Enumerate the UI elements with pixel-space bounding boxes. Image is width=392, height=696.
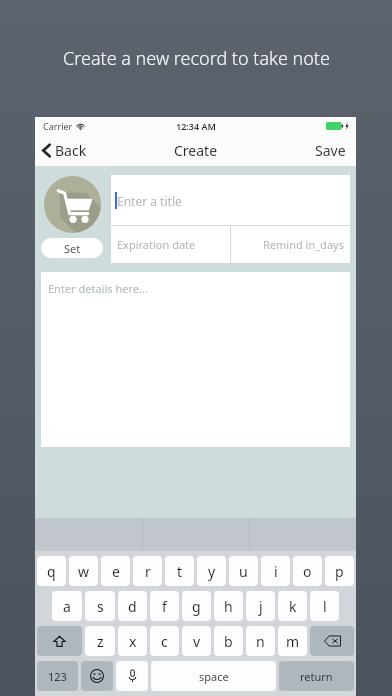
button[interactable]: h (214, 591, 243, 621)
button[interactable]: Save (305, 136, 356, 165)
staticText: n (256, 632, 265, 651)
staticText: q (47, 562, 56, 581)
staticText: g (192, 597, 201, 616)
staticText: i (274, 562, 278, 581)
button[interactable]: e (101, 556, 130, 586)
button[interactable]: Choose category icon (44, 176, 101, 233)
staticText: e (112, 562, 120, 581)
button[interactable]: 123 (37, 661, 78, 691)
staticText: r (145, 562, 151, 581)
staticText: u (239, 562, 248, 581)
staticText: Carrier (43, 120, 73, 132)
button[interactable]: d (118, 591, 147, 621)
staticText: a (63, 597, 71, 616)
button[interactable]: g (182, 591, 211, 621)
button[interactable]: Remind in_days (231, 226, 350, 263)
staticText: b (224, 632, 233, 651)
button[interactable]: r (133, 556, 162, 586)
button[interactable]: Dictation (116, 661, 148, 691)
staticText: Expiration date (117, 237, 196, 252)
button[interactable]: j (246, 591, 275, 621)
button[interactable]: n (246, 626, 275, 656)
button[interactable]: p (325, 556, 354, 586)
button[interactable]: o (293, 556, 322, 586)
staticText: y (208, 562, 216, 581)
button[interactable]: return (279, 661, 354, 691)
staticText: j (259, 597, 263, 616)
staticText: o (303, 562, 312, 581)
button[interactable]: Set (41, 238, 103, 258)
button[interactable]: k (278, 591, 307, 621)
staticText: Enter details here... (48, 281, 148, 296)
button[interactable]: Emoji (81, 661, 113, 691)
staticText: k (289, 597, 297, 616)
button[interactable]: Back (35, 136, 97, 165)
staticText: w (78, 562, 90, 581)
staticText: z (97, 632, 104, 651)
staticText: x (129, 632, 137, 651)
button[interactable]: s (85, 591, 115, 621)
staticText: Remind in_days (263, 237, 344, 252)
staticText: s (97, 597, 104, 616)
button[interactable]: Shift (37, 626, 82, 656)
button[interactable]: c (150, 626, 179, 656)
button[interactable]: y (197, 556, 226, 586)
button[interactable]: u (229, 556, 258, 586)
staticText: c (161, 632, 168, 651)
button[interactable]: i (261, 556, 290, 586)
button[interactable]: space (151, 661, 276, 691)
staticText: 123 (48, 669, 67, 684)
staticText: Enter a title (117, 193, 182, 209)
button[interactable]: q (37, 556, 66, 586)
button[interactable]: Enter details here... (41, 272, 350, 447)
button[interactable]: v (182, 626, 211, 656)
button[interactable]: t (165, 556, 194, 586)
staticText: p (335, 562, 344, 581)
button[interactable]: a (52, 591, 82, 621)
staticText: h (224, 597, 233, 616)
staticText: m (286, 632, 300, 651)
button[interactable]: Enter a title (111, 175, 350, 225)
button[interactable]: b (214, 626, 243, 656)
button[interactable]: m (278, 626, 307, 656)
staticText: 12:34 AM (176, 120, 216, 132)
button[interactable]: l (310, 591, 339, 621)
staticText: d (128, 597, 137, 616)
button[interactable]: f (150, 591, 179, 621)
staticText: f (162, 597, 167, 616)
staticText: Create a new record to take note (63, 46, 330, 71)
button[interactable]: z (85, 626, 115, 656)
staticText: Back (55, 141, 87, 160)
button[interactable]: x (118, 626, 147, 656)
staticText: t (177, 562, 183, 581)
staticText: v (193, 632, 201, 651)
staticText: l (323, 597, 327, 616)
staticText: return (300, 669, 333, 684)
button[interactable]: Expiration date (111, 226, 230, 263)
staticText: Set (64, 241, 81, 256)
staticText: Save (315, 141, 346, 160)
staticText: Create (174, 141, 218, 160)
staticText: space (199, 669, 229, 684)
button[interactable]: Backspace (310, 626, 354, 656)
button[interactable]: w (69, 556, 98, 586)
